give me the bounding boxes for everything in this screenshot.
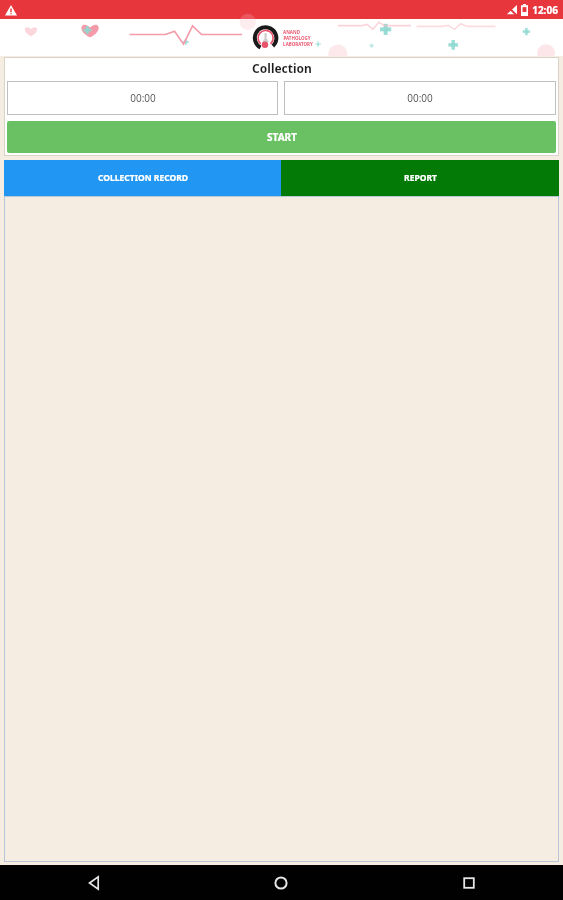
staticText: COLLECTION RECORD (98, 172, 188, 184)
button[interactable]: 00:00 (7, 81, 278, 115)
button[interactable]: START (7, 121, 556, 153)
staticText: ANAND (283, 29, 300, 35)
staticText: 00:00 (130, 91, 156, 105)
button[interactable]: Recent apps (375, 865, 563, 900)
staticText: 12:06 (532, 3, 558, 17)
staticText: Collection (252, 60, 312, 76)
staticText: LABORATORY (283, 41, 313, 47)
button[interactable]: 00:00 (284, 81, 556, 115)
staticText: 00:00 (407, 91, 433, 105)
staticText: START (267, 130, 297, 144)
button[interactable]: REPORT (281, 160, 559, 196)
button[interactable]: Home (187, 865, 375, 900)
staticText: REPORT (404, 172, 437, 184)
button[interactable]: COLLECTION RECORD (4, 160, 281, 196)
button[interactable]: Back (0, 865, 187, 900)
staticText: PATHOLOGY (283, 35, 311, 41)
